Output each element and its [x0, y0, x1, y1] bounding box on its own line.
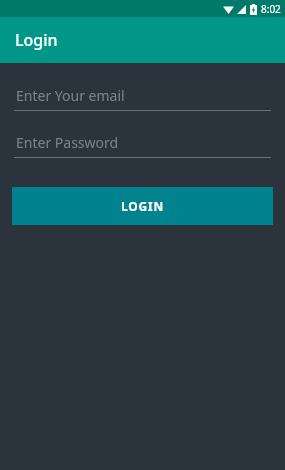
- button[interactable]: Enter Your email: [14, 84, 271, 111]
- staticText: 8:02: [261, 2, 281, 16]
- staticText: LOGIN: [121, 198, 165, 214]
- staticText: Enter Password: [16, 133, 119, 152]
- button[interactable]: LOGIN: [12, 187, 273, 225]
- staticText: Enter Your email: [16, 86, 125, 105]
- button[interactable]: Enter Password: [14, 131, 271, 158]
- staticText: Login: [15, 29, 58, 51]
